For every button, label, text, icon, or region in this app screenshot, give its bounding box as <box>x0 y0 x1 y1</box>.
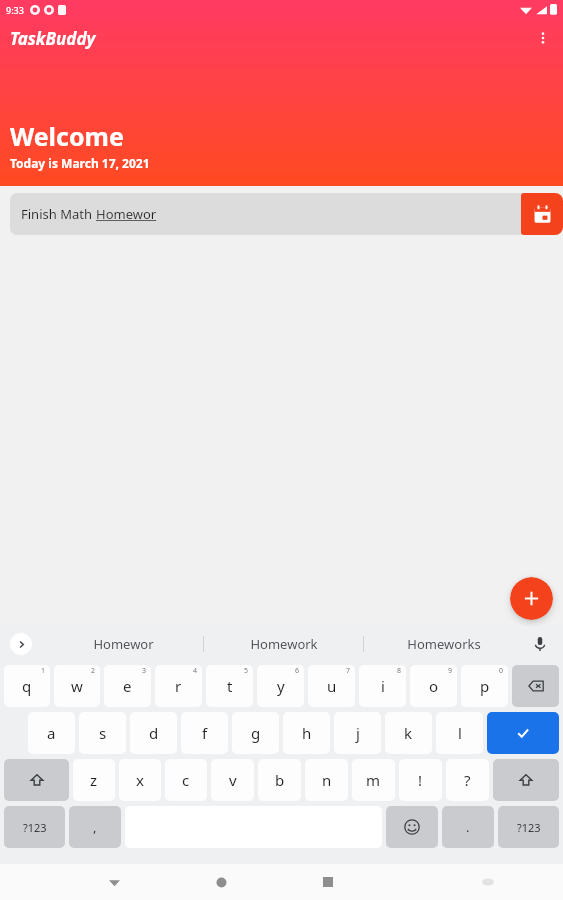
staticText: e <box>123 676 132 696</box>
staticText: ? <box>464 770 471 790</box>
button[interactable]: ?123 <box>498 806 559 848</box>
button[interactable]: Recents <box>310 864 346 900</box>
button[interactable]: r <box>155 665 202 707</box>
staticText: r <box>175 676 182 696</box>
staticText: g <box>251 723 261 743</box>
staticText: 3 <box>142 666 147 676</box>
button[interactable]: Back <box>96 864 132 900</box>
button[interactable]: u <box>308 665 355 707</box>
button[interactable]: b <box>258 759 301 801</box>
button[interactable]: m <box>352 759 395 801</box>
button[interactable]: Enter <box>487 712 559 754</box>
button[interactable]: p <box>461 665 508 707</box>
button[interactable]: Backspace <box>512 665 559 707</box>
button[interactable]: x <box>119 759 161 801</box>
button[interactable]: w <box>54 665 100 707</box>
staticText: m <box>366 770 381 790</box>
staticText: TaskBuddy <box>10 27 96 50</box>
button[interactable]: Homeworks <box>364 626 523 662</box>
staticText: o <box>429 676 439 696</box>
button[interactable]: a <box>28 712 75 754</box>
button[interactable]: Add task <box>510 577 553 620</box>
button[interactable]: c <box>165 759 207 801</box>
staticText: k <box>404 723 413 743</box>
button[interactable]: Finish Math <box>10 193 529 235</box>
staticText: y <box>277 676 285 696</box>
staticText: . <box>466 818 470 836</box>
staticText: q <box>22 676 32 696</box>
button[interactable]: e <box>104 665 151 707</box>
button[interactable]: k <box>385 712 432 754</box>
button[interactable]: h <box>283 712 330 754</box>
button[interactable]: ?123 <box>4 806 65 848</box>
button[interactable]: Emoji <box>386 806 438 848</box>
button[interactable]: ? <box>446 759 489 801</box>
button[interactable]: More suggestions <box>10 633 32 655</box>
staticText: x <box>136 770 144 790</box>
button[interactable]: i <box>359 665 406 707</box>
staticText: l <box>458 723 462 743</box>
button[interactable]: Switch keyboard <box>470 864 506 900</box>
staticText: i <box>381 676 385 696</box>
button[interactable]: Homewor <box>44 626 203 662</box>
staticText: 0 <box>499 666 504 676</box>
staticText: 9 <box>448 666 453 676</box>
staticText: Homewor <box>96 205 157 223</box>
button[interactable]: q <box>4 665 50 707</box>
button[interactable]: s <box>79 712 126 754</box>
button[interactable]: Shift <box>4 759 69 801</box>
button[interactable]: , <box>69 806 121 848</box>
staticText: 2 <box>91 666 96 676</box>
staticText: t <box>227 676 233 696</box>
button[interactable]: Homework <box>204 626 363 662</box>
staticText: z <box>90 770 98 790</box>
staticText: 1 <box>41 666 46 676</box>
button[interactable]: v <box>211 759 254 801</box>
staticText: Welcome <box>10 119 124 153</box>
button[interactable]: l <box>436 712 483 754</box>
staticText: 5 <box>244 666 249 676</box>
staticText: c <box>182 770 190 790</box>
staticText: b <box>275 770 285 790</box>
staticText: , <box>93 818 97 836</box>
staticText: 9:33 <box>6 4 24 16</box>
button[interactable]: o <box>410 665 457 707</box>
staticText: p <box>480 676 490 696</box>
button[interactable]: t <box>206 665 253 707</box>
staticText: 7 <box>346 666 351 676</box>
staticText: w <box>71 676 83 696</box>
staticText: ! <box>418 770 423 790</box>
staticText: s <box>99 723 107 743</box>
button[interactable]: n <box>305 759 348 801</box>
staticText: 6 <box>295 666 300 676</box>
staticText: ?123 <box>23 820 47 835</box>
staticText: Homework <box>250 635 318 653</box>
staticText: Homewor <box>93 635 154 653</box>
staticText: ?123 <box>517 820 541 835</box>
button[interactable]: j <box>334 712 381 754</box>
button[interactable]: d <box>130 712 177 754</box>
staticText: Homeworks <box>407 635 481 653</box>
staticText: 8 <box>397 666 402 676</box>
button[interactable]: z <box>73 759 115 801</box>
button[interactable]: Voice input <box>527 631 553 657</box>
staticText: v <box>229 770 237 790</box>
button[interactable]: y <box>257 665 304 707</box>
staticText: d <box>149 723 159 743</box>
button[interactable]: . <box>442 806 494 848</box>
button[interactable]: Pick date <box>521 193 563 235</box>
staticText: j <box>356 723 360 743</box>
button[interactable]: ! <box>399 759 442 801</box>
button[interactable]: Home <box>203 864 239 900</box>
staticText: Finish Math <box>21 205 96 223</box>
staticText: f <box>202 723 208 743</box>
staticText: 4 <box>193 666 198 676</box>
button[interactable]: More options <box>523 20 563 56</box>
staticText: Today is March 17, 2021 <box>10 155 150 171</box>
button[interactable]: f <box>181 712 228 754</box>
staticText: h <box>302 723 312 743</box>
staticText: u <box>327 676 337 696</box>
button[interactable]: g <box>232 712 279 754</box>
button[interactable]: Shift <box>493 759 559 801</box>
